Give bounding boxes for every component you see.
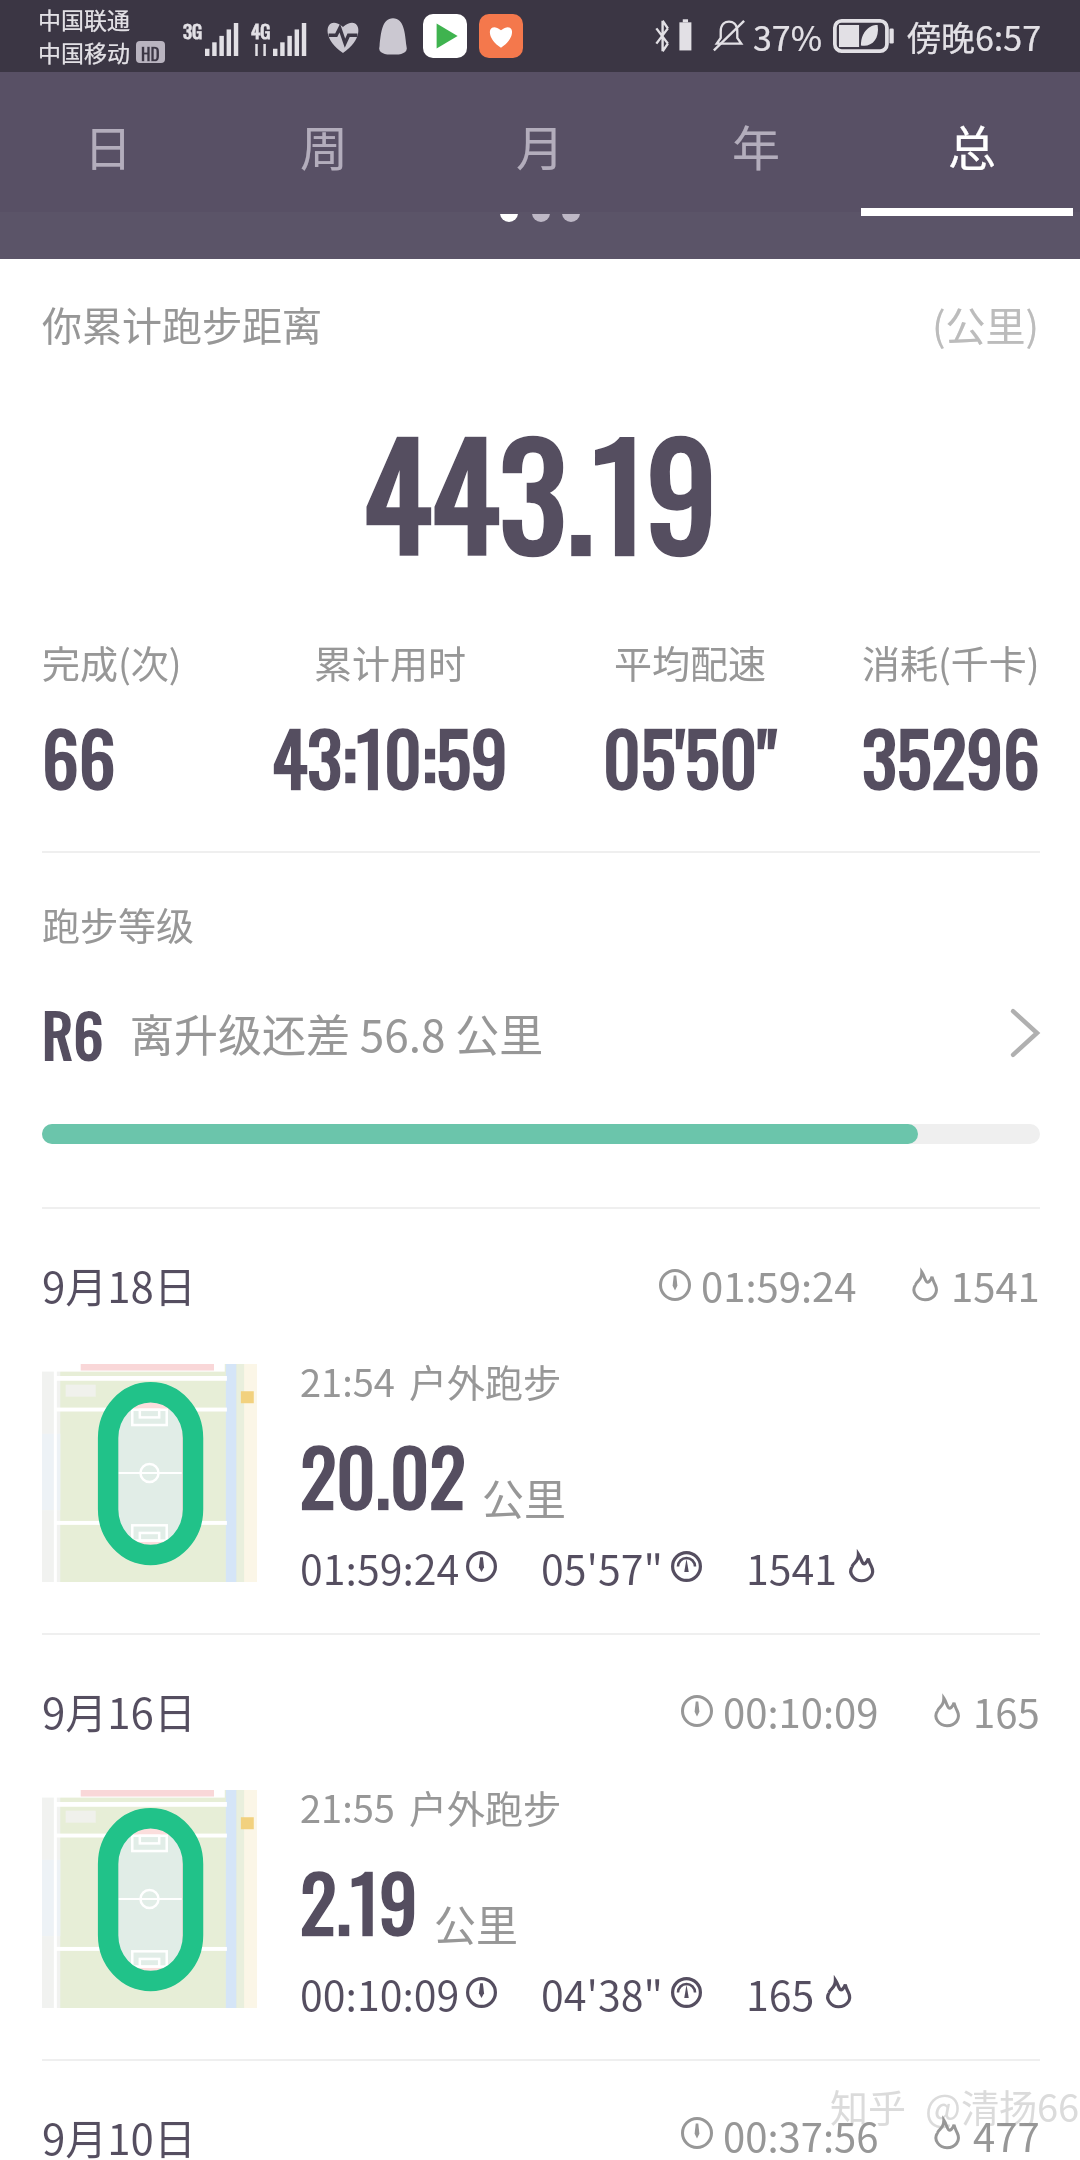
staticText: 跑步等级 (42, 896, 195, 951)
staticText: 平均配速 (614, 634, 767, 689)
staticText: @清扬666 (925, 2078, 1080, 2133)
staticText: 00:10:09 (723, 1682, 879, 1740)
button[interactable]: 9月18日 (0, 1209, 1080, 1633)
button[interactable]: 9月16日 (0, 1635, 1080, 2059)
staticText: 00:37:56 (723, 2106, 879, 2160)
staticText: 9月10日 (42, 2106, 196, 2160)
button[interactable]: 总 (864, 72, 1080, 217)
staticText: 66 (42, 702, 116, 810)
staticText: 21:55 (300, 1779, 395, 1834)
staticText: 总 (948, 110, 997, 180)
staticText: 消耗(千卡) (862, 634, 1040, 689)
other: View level details (1010, 1007, 1040, 1059)
button[interactable]: 年 (648, 72, 864, 217)
staticText: 21:54 (300, 1353, 395, 1408)
staticText: 37% (753, 12, 823, 61)
staticText: 165 (973, 1682, 1040, 1740)
button[interactable]: 周 (216, 72, 432, 217)
staticText: 累计用时 (314, 634, 467, 689)
staticText: 2.19 (300, 1844, 418, 1957)
staticText: 知乎 (830, 2078, 907, 2133)
staticText: 3G (183, 16, 203, 44)
staticText: 傍晚6:57 (907, 12, 1042, 61)
button[interactable]: 日 (0, 72, 216, 217)
staticText: 1541 (746, 1537, 838, 1596)
staticText: 43:10:59 (272, 702, 508, 810)
staticText: 00:10:09 (300, 1963, 460, 2022)
staticText: 周 (300, 110, 349, 180)
staticText: (公里) (932, 295, 1040, 353)
staticText: 公里 (434, 1892, 519, 1953)
button[interactable]: 月 (432, 72, 648, 217)
staticText: 你累计跑步距离 (42, 295, 322, 353)
button[interactable]: R6 (0, 988, 1080, 1077)
staticText: 04'38" (541, 1963, 663, 2022)
staticText: 9月16日 (42, 1680, 196, 1741)
staticText: 中国移动 (38, 35, 130, 68)
staticText: HD (141, 41, 160, 63)
staticText: 月 (516, 110, 565, 180)
staticText: 年 (732, 110, 781, 180)
staticText: 20.02 (300, 1418, 466, 1531)
staticText: 公里 (482, 1466, 567, 1527)
staticText: 477 (973, 2106, 1040, 2160)
staticText: 中国联通 (38, 2, 130, 35)
staticText: 01:59:24 (300, 1537, 460, 1596)
staticText: 4G (251, 16, 271, 44)
staticText: 01:59:24 (701, 1256, 857, 1314)
staticText: 165 (746, 1963, 815, 2022)
staticText: 户外跑步 (409, 1353, 562, 1408)
staticText: 日 (84, 110, 133, 180)
staticText: 完成(次) (42, 634, 182, 689)
staticText: 离升级还差 56.8 公里 (130, 1001, 544, 1065)
staticText: 35296 (862, 702, 1040, 810)
staticText: 户外跑步 (409, 1779, 562, 1834)
staticText: 1541 (951, 1256, 1040, 1314)
staticText: 9月18日 (42, 1254, 196, 1315)
staticText: R6 (42, 988, 104, 1077)
staticText: 05'57" (541, 1537, 663, 1596)
staticText: 443.19 (363, 386, 718, 595)
staticText: 05'50" (603, 702, 777, 810)
